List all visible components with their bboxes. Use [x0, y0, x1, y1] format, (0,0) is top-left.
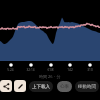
button[interactable]: 移動時間 — [75, 81, 99, 92]
staticText: 5.24 — [7, 68, 14, 72]
button[interactable]: 310 — [80, 63, 100, 73]
staticText: 310 — [87, 68, 93, 72]
staticText: 移動時間 — [78, 84, 96, 90]
button[interactable]: 5.24 — [0, 63, 20, 73]
staticText: 6'08 — [47, 68, 54, 72]
button[interactable]: Share — [0, 80, 12, 92]
button[interactable]: 心率 — [57, 81, 72, 92]
button[interactable]: 142 — [60, 63, 80, 73]
button[interactable]: 上下載入 — [29, 81, 53, 92]
button[interactable]: Edit — [14, 80, 26, 92]
staticText: 心率 — [60, 84, 69, 90]
staticText: 32:14 — [26, 68, 35, 72]
button[interactable]: 32:14 — [20, 63, 40, 73]
button[interactable]: 6'08 — [40, 63, 60, 73]
staticText: 上下載入 — [32, 84, 50, 90]
staticText: 時間 26・分 — [39, 74, 61, 79]
staticText: 142 — [67, 68, 73, 72]
